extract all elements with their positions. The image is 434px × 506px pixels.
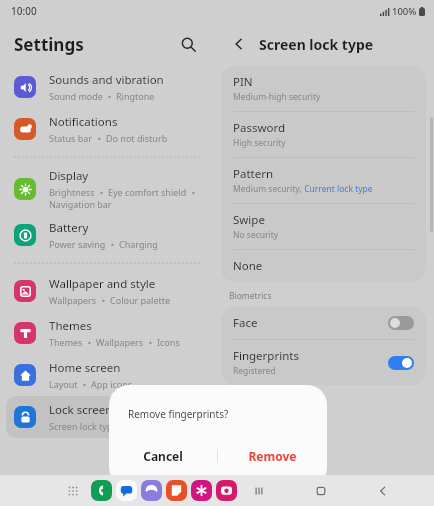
staticText: Swipe [233,212,265,228]
staticText: No security [233,229,279,241]
staticText: Remove fingerprints? [128,407,229,421]
button[interactable]: Display [6,164,209,214]
button[interactable]: Home screen [6,354,209,396]
staticText: Cancel [143,448,183,464]
staticText: Screen lock type [49,420,118,432]
staticText: • [93,132,106,144]
staticText: Themes [49,336,83,348]
staticText: High security [233,137,286,149]
staticText: Medium security, [233,183,302,195]
staticText: Medium-high security [233,91,321,103]
button[interactable]: Remove [218,439,327,473]
staticText: Wallpapers [96,336,144,348]
button[interactable]: All apps [62,480,84,502]
staticText: • [144,336,157,348]
staticText: Current lock type [302,183,373,195]
staticText: Ringtone [116,90,155,102]
button[interactable]: Back [227,32,251,56]
staticText: Battery [49,220,89,236]
button[interactable]: Phone [91,480,112,501]
staticText: Charging [119,238,158,250]
button[interactable]: Lock screen a [6,396,209,438]
staticText: Layout [49,378,78,390]
staticText: Wallpapers [49,294,97,306]
button[interactable] [388,316,414,330]
staticText: Settings [14,33,84,56]
staticText: Do not disturb [106,132,168,144]
button[interactable]: Notifications [6,108,209,150]
staticText: Face [233,315,258,331]
button[interactable]: Wallpaper and style [6,270,209,312]
staticText: Power saving [49,238,106,250]
button[interactable]: Search [175,31,201,57]
button[interactable]: Themes [6,312,209,354]
staticText: Wallpaper and style [49,276,156,292]
staticText: • [95,186,108,198]
staticText: Password [233,120,286,136]
button[interactable]: Back [370,478,396,504]
staticText: • [78,378,91,390]
button[interactable]: Home [308,478,334,504]
staticText: Remove [248,448,297,464]
staticText: 10:00 [11,4,37,18]
button[interactable]: Gallery [191,480,212,501]
button[interactable]: None [221,250,426,282]
staticText: Biometrics [229,290,272,302]
staticText: • [97,294,110,306]
staticText: Pattern [233,166,274,182]
staticText: PIN [233,74,253,90]
button[interactable]: Password [221,112,426,157]
staticText: Icons [157,336,180,348]
button[interactable]: Battery [6,214,209,256]
staticText: App icons [91,378,133,390]
button[interactable]: Camera [216,480,237,501]
staticText: Sound mode [49,90,103,102]
staticText: Display [49,168,89,184]
staticText: • [187,186,196,198]
staticText: Registered [233,365,276,377]
staticText: • [106,238,119,250]
button[interactable]: Fingerprints [221,340,426,385]
button[interactable]: Swipe [221,204,426,249]
button[interactable]: Notes [166,480,187,501]
staticText: • [83,336,96,348]
staticText: Home screen [49,360,121,376]
button[interactable]: Pattern [221,158,426,203]
staticText: Status bar [49,132,93,144]
staticText: Navigation bar [49,198,112,210]
button[interactable]: Messages [116,480,137,501]
button[interactable]: Internet [141,480,162,501]
staticText: Lock screen a [49,402,122,418]
staticText: Screen lock type [259,35,374,54]
staticText: • [103,90,116,102]
button[interactable]: Sounds and vibration [6,66,209,108]
staticText: None [233,258,263,274]
staticText: Fingerprints [233,348,299,364]
staticText: Colour palette [110,294,171,306]
staticText: Brightness [49,186,95,198]
button[interactable] [388,356,414,370]
button[interactable]: Face [221,307,426,339]
staticText: Notifications [49,114,118,130]
button[interactable]: Cancel [109,439,217,473]
button[interactable]: PIN [221,66,426,111]
button[interactable]: Recents [246,478,272,504]
staticText: Sounds and vibration [49,72,164,88]
staticText: Themes [49,318,92,334]
staticText: Eye comfort shield [108,186,187,198]
staticText: 100% [392,5,417,18]
